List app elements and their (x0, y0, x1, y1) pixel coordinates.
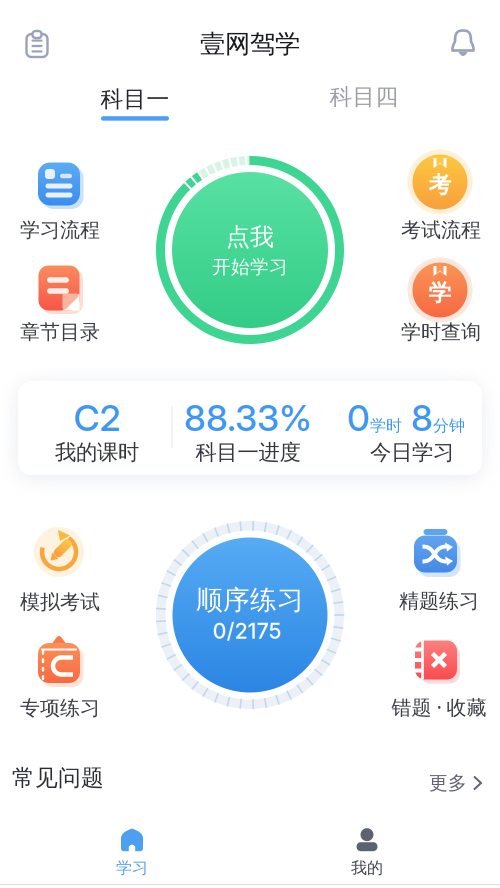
staticText: 模拟考试 (20, 590, 100, 614)
button[interactable]: 顺序练习 (154, 519, 346, 711)
button[interactable]: 科目四 (321, 75, 406, 119)
staticText: 0/2175 (212, 618, 281, 644)
staticText: 更多 (429, 771, 467, 794)
button[interactable]: 我的 (307, 822, 427, 884)
button[interactable]: 学习流程 (6, 151, 112, 244)
button[interactable]: 科目一 (100, 85, 169, 121)
staticText: 分钟 (433, 416, 465, 436)
button[interactable]: 错题 · 收藏 (385, 627, 491, 721)
staticText: 点我 (226, 222, 274, 252)
button[interactable]: 章节目录 (6, 255, 112, 346)
staticText: 科目一进度 (195, 439, 300, 466)
staticText: 章节目录 (20, 320, 100, 344)
button[interactable]: 学习 (72, 822, 192, 884)
staticText: 学习 (116, 858, 148, 878)
staticText: 开始学习 (212, 255, 288, 278)
button[interactable]: 模拟考试 (6, 519, 112, 616)
staticText: 精题练习 (399, 589, 479, 613)
button[interactable]: 更多 (423, 765, 487, 800)
staticText: 专项练习 (20, 696, 100, 720)
staticText: 学习流程 (20, 218, 100, 242)
button[interactable]: 精题练习 (385, 520, 491, 615)
staticText: 今日学习 (370, 439, 454, 466)
staticText: 我的 (351, 858, 383, 878)
staticText: 8 (402, 396, 433, 440)
staticText: 学时 (370, 416, 402, 436)
staticText: 顺序练习 (196, 584, 304, 616)
staticText: 壹网驾学 (200, 28, 300, 59)
staticText: 常见问题 (12, 764, 104, 792)
staticText: 考 (428, 171, 451, 199)
button[interactable]: 点我 (152, 152, 348, 348)
button[interactable]: 专项练习 (6, 629, 112, 722)
button[interactable]: Notifications (441, 22, 485, 66)
button[interactable]: 考 (387, 149, 493, 244)
staticText: 0 (347, 396, 370, 440)
button[interactable]: 学 (387, 257, 493, 346)
staticText: 科目四 (329, 83, 398, 111)
button[interactable]: Study records (15, 22, 59, 66)
staticText: C2 (73, 396, 120, 440)
staticText: 考试流程 (401, 218, 481, 242)
staticText: 学 (428, 279, 451, 307)
staticText: 错题 · 收藏 (391, 694, 486, 720)
staticText: 88.33% (184, 396, 312, 440)
staticText: 学时查询 (401, 320, 481, 344)
staticText: 科目一 (100, 85, 169, 113)
staticText: 我的课时 (55, 439, 139, 466)
